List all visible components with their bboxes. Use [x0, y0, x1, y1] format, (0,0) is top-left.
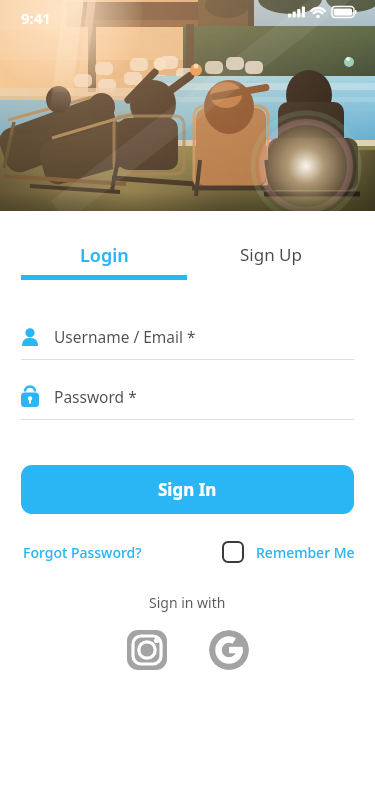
staticText: Password * — [54, 386, 137, 407]
staticText: Remember Me — [256, 543, 355, 562]
button[interactable]: Sign In — [21, 465, 354, 514]
staticText: 9:41 — [21, 8, 51, 28]
staticText: Sign In — [158, 478, 217, 501]
button[interactable]: Sign Up — [187, 243, 354, 278]
button[interactable]: Login — [21, 243, 187, 280]
staticText: Sign in with — [149, 593, 226, 612]
button[interactable]: Username / Email * — [21, 326, 354, 360]
staticText: Sign Up — [240, 243, 302, 266]
button[interactable]: Forgot Password? — [23, 543, 142, 562]
button[interactable] — [209, 630, 249, 670]
button[interactable]: Password * — [21, 385, 354, 420]
button[interactable]: Remember Me — [222, 541, 355, 563]
staticText: Username / Email * — [54, 326, 196, 347]
button[interactable] — [127, 630, 167, 670]
staticText: Login — [80, 243, 129, 268]
